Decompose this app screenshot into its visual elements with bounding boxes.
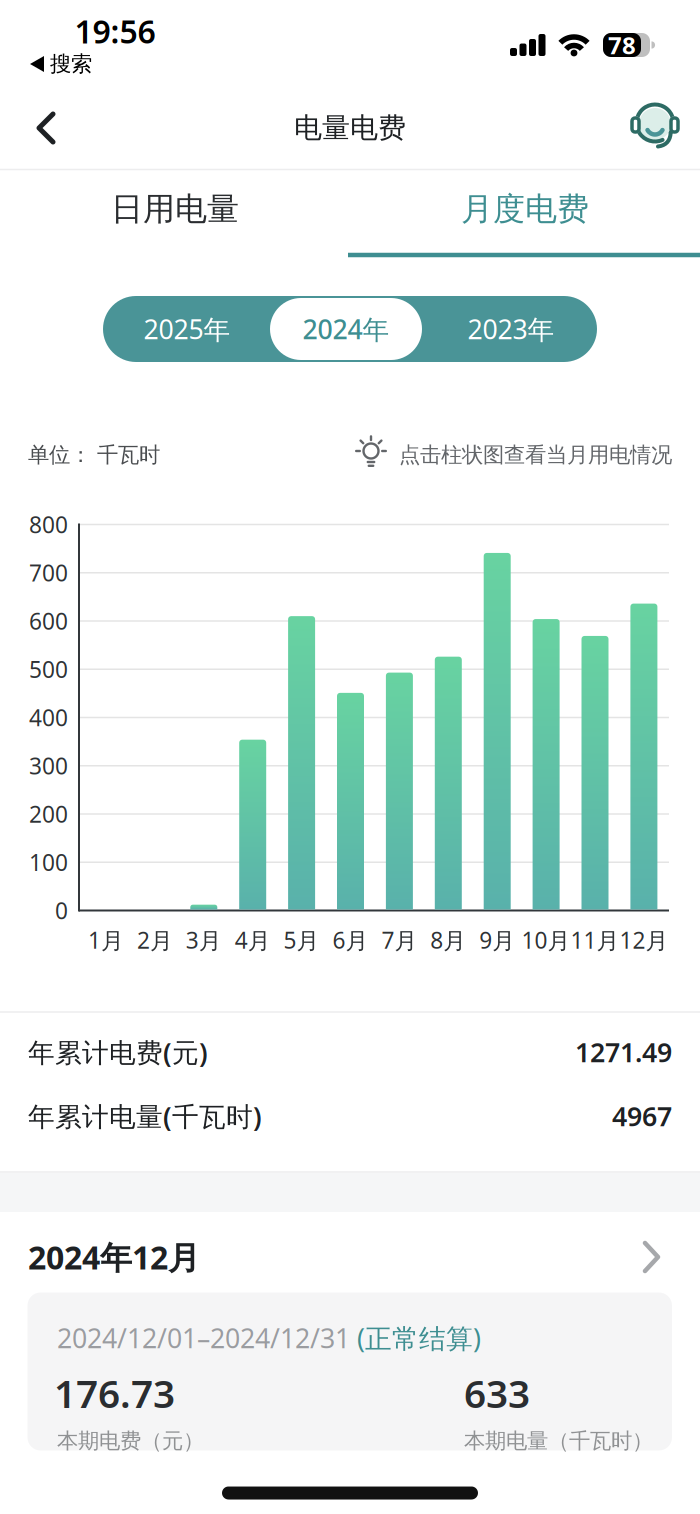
staticText: 点击柱状图查看当月用电情况 [399,442,672,468]
staticText: 7月 [381,925,417,955]
staticText: 500 [29,654,68,684]
staticText: 本期电费（元） [57,1428,204,1454]
staticText: 176.73 [54,1367,175,1419]
staticText: 0 [55,895,68,925]
button[interactable]: 2023年 [431,296,591,362]
staticText: 2月 [137,925,173,955]
staticText: 19:56 [74,10,155,52]
staticText: 1271.49 [575,1034,672,1070]
staticText: 12月 [619,925,668,955]
button[interactable] [239,740,266,909]
staticText: 4月 [235,925,271,955]
staticText: 5月 [284,925,320,955]
staticText: 600 [29,606,68,636]
button[interactable] [386,673,413,909]
button[interactable] [630,101,680,151]
button[interactable]: 日用电量 [0,167,350,251]
staticText: 电量电费 [294,111,406,145]
button[interactable] [435,657,462,909]
staticText: 年累计电费(元) [28,1034,208,1070]
staticText: 2025年 [143,311,230,347]
button[interactable]: 2025年 [107,296,267,362]
staticText: 3月 [186,925,222,955]
button[interactable] [484,553,511,909]
button[interactable] [630,604,657,909]
button[interactable] [19,109,75,147]
staticText: 4967 [612,1098,672,1134]
staticText: 2023年 [467,311,554,347]
staticText: 9月 [479,925,515,955]
button[interactable] [581,636,608,909]
button[interactable] [288,616,315,909]
staticText: 100 [29,847,68,877]
staticText: 10月 [522,925,571,955]
staticText: 1月 [88,925,124,955]
staticText: 400 [29,702,68,732]
staticText: 2024年12月 [28,1236,200,1278]
staticText: 78 [608,29,636,61]
staticText: 700 [29,558,68,588]
staticText: 月度电费 [461,189,589,229]
button[interactable]: 2024年12月 [28,1224,672,1290]
staticText: 200 [29,799,68,829]
staticText: 800 [29,509,68,539]
button[interactable] [533,619,560,909]
staticText: 日用电量 [111,189,239,229]
staticText: 本期电量（千瓦时） [464,1428,653,1454]
staticText: 8月 [430,925,466,955]
staticText: 633 [464,1367,530,1419]
button[interactable] [190,905,217,909]
staticText: 年累计电量(千瓦时) [28,1098,262,1134]
button[interactable]: 2024年 [270,296,422,362]
button[interactable]: 2024/12/01–2024/12/31 [27,1292,672,1450]
button[interactable]: 月度电费 [350,167,700,251]
staticText: 2024/12/01–2024/12/31 [57,1320,357,1356]
staticText: 11月 [570,925,619,955]
staticText: 2024年 [302,311,389,347]
button[interactable] [337,693,364,909]
staticText: 300 [29,751,68,781]
staticText: 6月 [332,925,368,955]
staticText: 搜索 [50,51,92,77]
staticText: 单位： 千瓦时 [28,442,160,468]
staticText: (正常结算) [357,1320,481,1356]
